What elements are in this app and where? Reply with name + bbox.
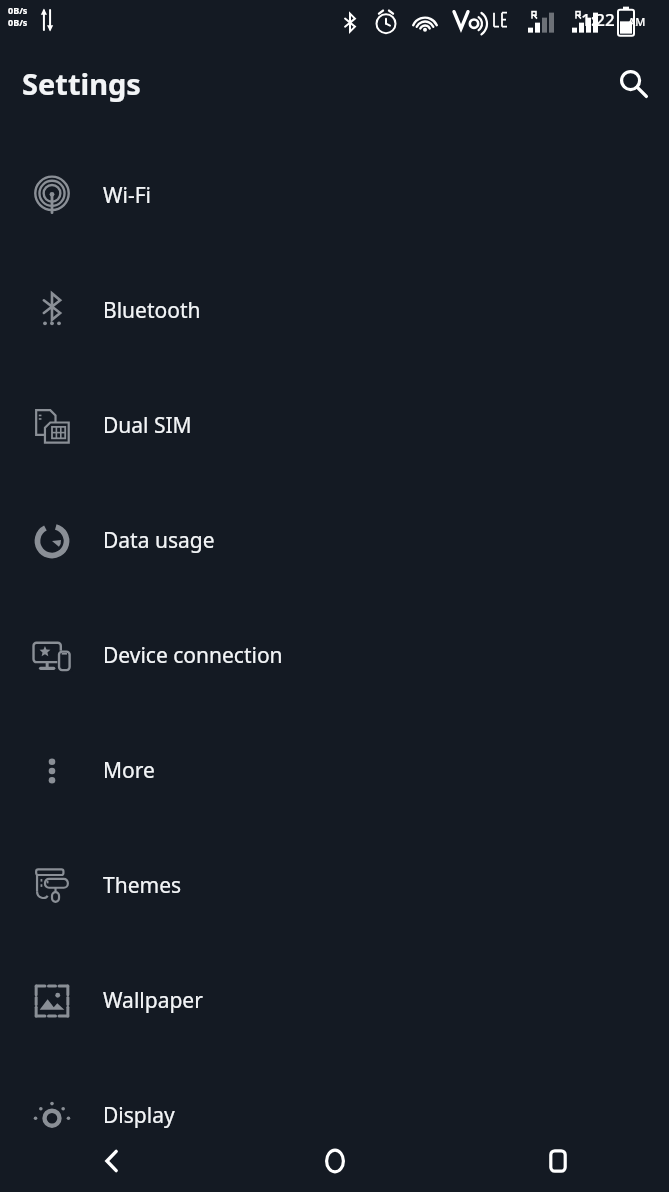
button[interactable]: Wi-Fi	[0, 138, 669, 253]
staticText: Wi-Fi	[103, 181, 152, 210]
button[interactable]: Dual SIM	[0, 368, 669, 483]
staticText: Display	[103, 1101, 175, 1130]
staticText: 0B/s	[8, 4, 28, 16]
staticText: Bluetooth	[103, 296, 201, 325]
staticText: Settings	[22, 64, 141, 103]
staticText: Themes	[103, 871, 182, 900]
button[interactable]: Recents	[446, 1130, 669, 1192]
staticText: Wallpaper	[103, 986, 203, 1015]
staticText: Device connection	[103, 641, 283, 670]
button[interactable]: More	[0, 713, 669, 828]
button[interactable]: Device connection	[0, 598, 669, 713]
button[interactable]: Themes	[0, 828, 669, 943]
button[interactable]: Back	[0, 1130, 223, 1192]
button[interactable]: Search	[601, 51, 665, 115]
staticText: 0B/s	[8, 16, 28, 28]
button[interactable]: Bluetooth	[0, 253, 669, 368]
staticText: AM	[628, 14, 646, 29]
button[interactable]: Wallpaper	[0, 943, 669, 1058]
staticText: Dual SIM	[103, 411, 192, 440]
button[interactable]: Data usage	[0, 483, 669, 598]
staticText: More	[103, 756, 155, 785]
staticText: 1:22	[581, 8, 615, 31]
button[interactable]: Display	[0, 1058, 669, 1173]
staticText: Data usage	[103, 526, 215, 555]
button[interactable]: Home	[223, 1130, 446, 1192]
